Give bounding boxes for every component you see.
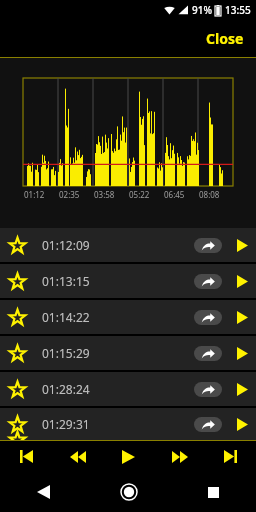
button[interactable]: Bookmark: [0, 336, 256, 370]
staticText: 01:15:29: [42, 345, 90, 361]
staticText: 91%: [192, 3, 212, 17]
button[interactable]: Share: [194, 417, 222, 432]
button[interactable]: Bookmark: [0, 228, 256, 262]
staticText: 01:14:22: [42, 309, 90, 325]
button[interactable]: Bookmark: [0, 300, 34, 334]
button[interactable]: Bookmark: [0, 372, 34, 406]
button[interactable]: Play: [228, 408, 256, 440]
staticText: 05:22: [129, 189, 150, 200]
button[interactable]: Share: [194, 238, 222, 253]
button[interactable]: Share: [194, 274, 222, 289]
button[interactable]: Bookmark: [0, 408, 256, 440]
button[interactable]: Play: [228, 228, 256, 262]
button[interactable]: Back: [0, 472, 86, 512]
button[interactable]: Bookmark: [0, 372, 256, 406]
button[interactable]: Share: [194, 382, 222, 397]
button[interactable]: Bookmark: [0, 264, 256, 298]
button[interactable]: Play: [228, 336, 256, 370]
button[interactable]: Recents: [171, 472, 256, 512]
staticText: 01:28:24: [42, 381, 90, 397]
staticText: 02:35: [59, 189, 80, 200]
button[interactable]: Play: [228, 372, 256, 406]
button[interactable]: Bookmark: [0, 408, 34, 440]
button[interactable]: Fast forward: [154, 441, 205, 472]
staticText: 01:13:15: [42, 273, 90, 289]
staticText: 01:12: [24, 189, 45, 200]
staticText: 06:45: [164, 189, 185, 200]
button[interactable]: Home: [86, 472, 171, 512]
staticText: Close: [206, 29, 244, 48]
button[interactable]: Bookmark: [0, 264, 34, 298]
button[interactable]: Close: [194, 23, 256, 54]
button[interactable]: Skip to start: [0, 441, 52, 472]
staticText: 13:55: [225, 3, 251, 17]
staticText: 03:58: [94, 189, 115, 200]
button[interactable]: Share: [194, 346, 222, 361]
button[interactable]: Play: [103, 441, 154, 472]
button[interactable]: Bookmark: [0, 300, 256, 334]
staticText: 01:12:09: [42, 237, 90, 253]
staticText: 08:08: [199, 189, 220, 200]
button[interactable]: Bookmark: [0, 336, 34, 370]
button[interactable]: Share: [194, 310, 222, 325]
button[interactable]: Rewind: [52, 441, 103, 472]
button[interactable]: Skip to end: [205, 441, 256, 472]
staticText: 01:29:31: [42, 416, 90, 432]
button[interactable]: Play: [228, 300, 256, 334]
button[interactable]: Bookmark: [0, 228, 34, 262]
button[interactable]: Play: [228, 264, 256, 298]
